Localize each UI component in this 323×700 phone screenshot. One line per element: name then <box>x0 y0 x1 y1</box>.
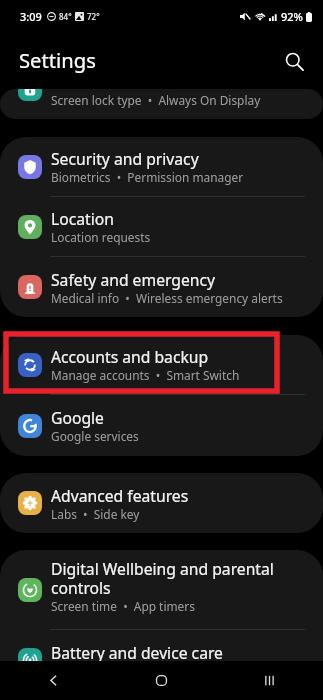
button[interactable]: Google <box>0 395 323 456</box>
staticText: Accounts and backup <box>51 346 209 367</box>
staticText: 72° <box>87 11 100 22</box>
staticText: 84° <box>59 11 72 22</box>
staticText: Battery and device care <box>51 642 223 661</box>
button[interactable]: Recent apps <box>215 661 323 700</box>
staticText: Medical info • Wireless emergency alerts <box>51 290 283 306</box>
staticText: Advanced features <box>51 485 189 506</box>
button[interactable]: Back <box>0 661 107 700</box>
staticText: Location requests <box>51 229 151 245</box>
staticText: Labs • Side key <box>51 506 140 522</box>
button[interactable]: Home <box>107 661 215 700</box>
staticText: Screen time • App timers <box>51 598 195 614</box>
button[interactable]: Search <box>275 42 313 80</box>
button[interactable]: Lock screen and AOD <box>0 89 323 119</box>
staticText: Location <box>51 208 114 229</box>
button[interactable]: Location <box>0 197 323 257</box>
staticText: Security and privacy <box>51 148 199 169</box>
button[interactable]: Security and privacy <box>0 137 323 197</box>
button[interactable]: Safety and emergency <box>0 257 323 317</box>
staticText: Screen lock type • Always On Display <box>51 92 261 108</box>
staticText: 3:09 <box>20 9 42 24</box>
staticText: Settings <box>19 46 96 74</box>
staticText: Google <box>51 407 104 428</box>
staticText: Biometrics • Permission manager <box>51 169 244 185</box>
staticText: Google services <box>51 428 139 444</box>
staticText: Digital Wellbeing and parental controls <box>51 558 293 598</box>
staticText: 92% <box>281 9 303 24</box>
staticText: Manage accounts • Smart Switch <box>51 367 240 383</box>
button[interactable]: Battery and device care <box>0 630 323 661</box>
button[interactable]: Digital Wellbeing and parental controls <box>0 550 323 630</box>
staticText: Safety and emergency <box>51 269 216 290</box>
button[interactable]: Advanced features <box>0 473 323 533</box>
button[interactable]: Accounts and backup <box>0 335 323 395</box>
